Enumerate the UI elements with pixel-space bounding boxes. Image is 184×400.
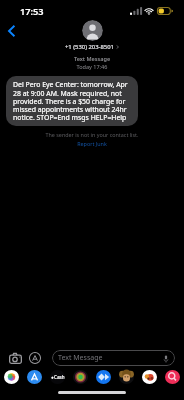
staticText: Text Message [0, 55, 184, 62]
staticText: Del Pero Eye Center: tomorrow, Apr 28 at… [13, 80, 133, 122]
button[interactable]: Back [2, 22, 20, 40]
button[interactable]: Dictate [161, 354, 170, 363]
button[interactable]: App Store [25, 368, 44, 385]
button[interactable]: Memoji [117, 368, 136, 385]
staticText: Today 17:46 [0, 63, 184, 70]
button[interactable]: Apple Cash [48, 368, 67, 385]
button[interactable]: Music [71, 368, 90, 385]
button[interactable]: Images [163, 368, 182, 385]
button[interactable]: Photos [2, 368, 21, 385]
staticText: Cash [54, 374, 65, 380]
button[interactable]: Text Message [52, 350, 175, 366]
button[interactable]: Camera [7, 350, 23, 366]
button[interactable]: +1 (530) 203-8501 [65, 43, 119, 51]
button[interactable]: Apps [94, 368, 113, 385]
button[interactable]: Del Pero Eye Center: tomorrow, Apr 28 at… [13, 80, 133, 122]
staticText: +1 (530) 203-8501 [65, 43, 114, 51]
staticText: 17:53 [20, 5, 44, 18]
staticText: The sender is not in your contact list. [0, 131, 184, 138]
button[interactable]: App Store [27, 350, 43, 366]
button[interactable]: Report Junk [75, 140, 109, 147]
button[interactable]: Contact [82, 20, 103, 41]
button[interactable]: Memoji 2 [140, 368, 159, 385]
staticText: Text Message [58, 353, 103, 363]
